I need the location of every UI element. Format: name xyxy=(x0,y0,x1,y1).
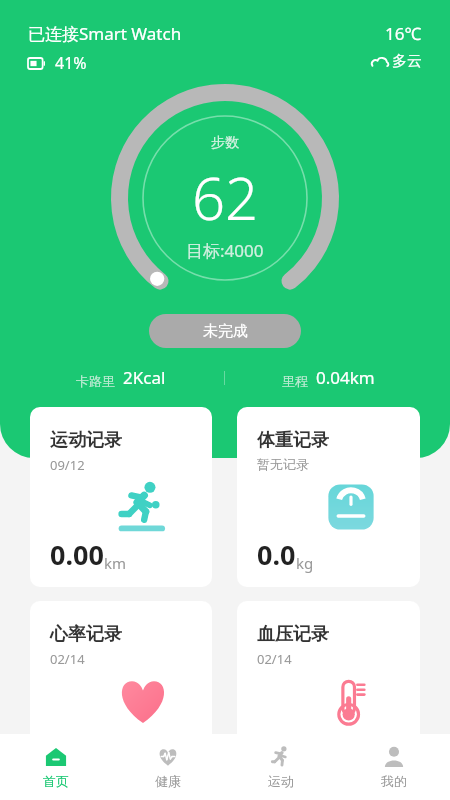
staticText: 步数 xyxy=(211,134,239,152)
button[interactable]: 未完成 xyxy=(149,314,301,348)
staticText: 暂无记录 xyxy=(257,456,309,472)
button[interactable]: 健康 xyxy=(112,734,224,800)
staticText: 02/14 xyxy=(50,650,85,668)
staticText: 62 xyxy=(192,158,259,237)
staticText: 卡路里 xyxy=(76,373,115,389)
staticText: 我的 xyxy=(381,773,407,789)
staticText: 运动 xyxy=(268,773,294,789)
button[interactable]: 运动记录 xyxy=(30,407,212,587)
staticText: kg xyxy=(296,553,314,573)
staticText: 运动记录 xyxy=(50,429,122,452)
staticText: 未完成 xyxy=(203,322,248,341)
staticText: km xyxy=(104,553,127,573)
staticText: 健康 xyxy=(155,773,181,789)
staticText: 0.0 xyxy=(257,536,296,573)
button[interactable]: 运动 xyxy=(224,734,337,800)
button[interactable]: 血压记录 xyxy=(237,601,420,781)
staticText: 09/12 xyxy=(50,456,85,474)
staticText: 目标:4000 xyxy=(186,239,264,262)
button[interactable]: 体重记录 xyxy=(237,407,420,587)
staticText: 体重记录 xyxy=(257,429,329,452)
button[interactable]: 我的 xyxy=(337,734,450,800)
staticText: 已连接Smart Watch xyxy=(28,22,182,45)
staticText: 2Kcal xyxy=(123,366,166,389)
staticText: 血压记录 xyxy=(257,623,329,646)
staticText: 0.04km xyxy=(316,366,375,389)
staticText: 0.00 xyxy=(50,536,104,573)
button[interactable]: 首页 xyxy=(0,734,112,800)
staticText: 多云 xyxy=(392,52,422,71)
staticText: 里程 xyxy=(282,373,308,389)
staticText: 02/14 xyxy=(257,650,292,668)
staticText: 16℃ xyxy=(385,22,422,45)
staticText: 心率记录 xyxy=(50,623,122,646)
staticText: 41% xyxy=(55,52,87,74)
button[interactable]: 心率记录 xyxy=(30,601,212,781)
staticText: 首页 xyxy=(43,773,69,789)
